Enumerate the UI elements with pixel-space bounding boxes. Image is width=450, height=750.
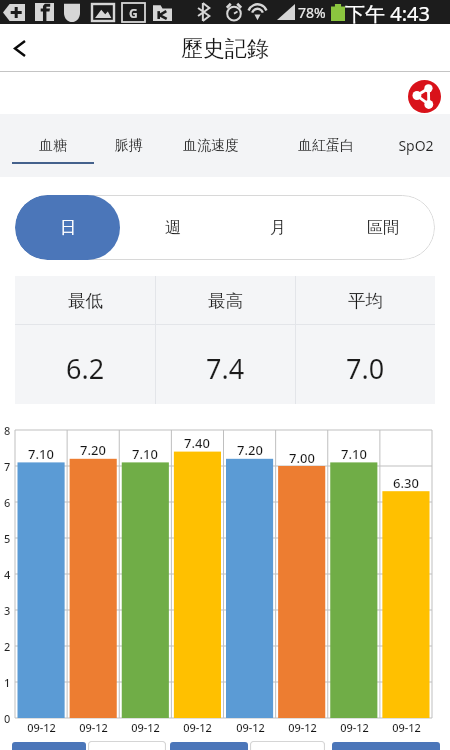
- button[interactable]: Action: [332, 742, 440, 750]
- staticText: 78%: [298, 3, 326, 22]
- button[interactable]: Share: [408, 80, 441, 113]
- staticText: 下午 4:43: [345, 0, 430, 24]
- button[interactable]: 日: [15, 195, 120, 260]
- staticText: 09-12: [288, 720, 317, 735]
- staticText: 週: [165, 218, 181, 238]
- staticText: 5: [4, 531, 11, 546]
- staticText: 最低: [68, 290, 103, 312]
- staticText: 09-12: [392, 720, 421, 735]
- staticText: 7.10: [28, 445, 54, 463]
- staticText: 歷史記錄: [181, 35, 269, 63]
- staticText: 09-12: [340, 720, 369, 735]
- staticText: 月: [270, 218, 286, 238]
- staticText: 血流速度: [183, 137, 239, 155]
- button[interactable]: SpO2: [376, 114, 450, 177]
- staticText: 09-12: [131, 720, 160, 735]
- staticText: 7.10: [341, 445, 367, 463]
- staticText: 最高: [208, 290, 243, 312]
- staticText: 7.20: [237, 441, 263, 459]
- staticText: 1: [4, 675, 11, 690]
- staticText: 7.20: [80, 441, 106, 459]
- staticText: 7.10: [132, 445, 158, 463]
- button[interactable]: Action: [88, 741, 166, 750]
- staticText: 4: [4, 567, 11, 582]
- staticText: 09-12: [79, 720, 108, 735]
- button[interactable]: 血糖: [15, 114, 91, 177]
- staticText: 7.00: [289, 449, 315, 467]
- staticText: 7: [4, 459, 11, 474]
- staticText: 7.0: [346, 350, 385, 387]
- staticText: 區間: [367, 218, 399, 238]
- staticText: 6.2: [66, 350, 105, 387]
- button[interactable]: Action: [170, 742, 248, 750]
- staticText: 8: [4, 423, 11, 438]
- staticText: 3: [4, 603, 11, 618]
- staticText: SpO2: [398, 136, 434, 155]
- staticText: 2: [4, 639, 11, 654]
- staticText: 平均: [348, 290, 383, 312]
- staticText: 09-12: [27, 720, 56, 735]
- staticText: 日: [60, 218, 76, 238]
- button[interactable]: 血流速度: [161, 114, 261, 177]
- staticText: 09-12: [236, 720, 265, 735]
- button[interactable]: 週: [120, 195, 225, 260]
- button[interactable]: 區間: [330, 195, 435, 260]
- staticText: 血糖: [39, 137, 67, 155]
- staticText: 0: [4, 711, 11, 726]
- staticText: 脈搏: [115, 137, 143, 155]
- button[interactable]: Action: [250, 741, 325, 750]
- staticText: 09-12: [183, 720, 212, 735]
- staticText: 6: [4, 495, 11, 510]
- button[interactable]: Action: [12, 742, 86, 750]
- button[interactable]: 脈搏: [91, 114, 167, 177]
- button[interactable]: 血紅蛋白: [274, 114, 378, 177]
- staticText: 6.30: [393, 474, 419, 492]
- staticText: 血紅蛋白: [298, 137, 354, 155]
- staticText: G: [129, 5, 138, 21]
- button[interactable]: Back: [0, 24, 40, 72]
- button[interactable]: 月: [225, 195, 330, 260]
- staticText: 7.40: [184, 434, 210, 452]
- staticText: 7.4: [206, 350, 245, 387]
